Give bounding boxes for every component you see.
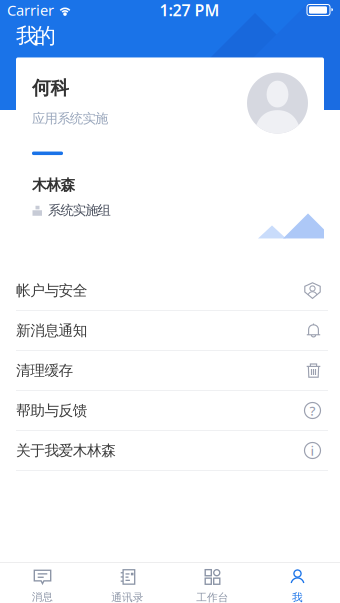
staticText: ?	[309, 402, 315, 419]
button[interactable]: 帐户与安全	[0, 271, 340, 310]
staticText: 新消息通知	[16, 321, 88, 339]
button[interactable]: 我	[255, 562, 340, 603]
button[interactable]: 帮助与反馈	[0, 391, 340, 430]
staticText: 1:27 PM	[159, 0, 219, 21]
button[interactable]: 清理缓存	[0, 351, 340, 390]
staticText: 木林森	[32, 176, 75, 194]
staticText: 何科	[32, 77, 69, 99]
staticText: 消息	[32, 590, 53, 603]
staticText: 我	[292, 591, 303, 603]
staticText: 关于我爱木林森	[16, 441, 116, 459]
staticText: 我的	[16, 23, 55, 49]
staticText: 帮助与反馈	[16, 401, 88, 419]
staticText: Carrier	[7, 0, 54, 20]
button[interactable]: 工作台	[170, 562, 255, 603]
staticText: 工作台	[196, 591, 229, 603]
staticText: 清理缓存	[16, 361, 74, 379]
button[interactable]: 通讯录	[85, 562, 170, 603]
staticText: 通讯录	[111, 591, 144, 603]
staticText: 帐户与安全	[16, 281, 88, 299]
staticText: 系统实施组	[48, 202, 111, 218]
staticText: i	[310, 442, 314, 459]
button[interactable]: 关于我爱木林森	[0, 431, 340, 470]
button[interactable]: 新消息通知	[0, 311, 340, 350]
staticText: 应用系统实施	[32, 110, 108, 127]
button[interactable]: 消息	[0, 562, 85, 603]
